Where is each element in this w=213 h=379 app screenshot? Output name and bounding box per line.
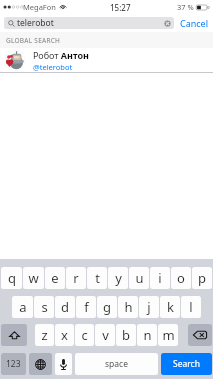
button[interactable]: q (1, 267, 22, 289)
button[interactable]: d (55, 296, 75, 318)
button[interactable]: z (35, 324, 54, 346)
button[interactable]: v (95, 324, 115, 346)
staticText: telerobot (17, 17, 54, 29)
staticText: g (103, 298, 111, 316)
button[interactable]: Search (161, 353, 212, 375)
button[interactable]: k (160, 296, 180, 318)
staticText: q (8, 269, 16, 287)
staticText: @telerobot (33, 62, 73, 72)
staticText: 15:27 (110, 2, 131, 13)
staticText: d (61, 298, 69, 316)
button[interactable]: n (137, 324, 157, 346)
staticText: r (73, 269, 79, 287)
button[interactable]: Change keyboard (29, 353, 52, 375)
button[interactable]: y (108, 267, 128, 289)
staticText: m (162, 326, 175, 344)
button[interactable]: g (97, 296, 117, 318)
button[interactable]: x (55, 324, 74, 346)
button[interactable]: f (76, 296, 96, 318)
button[interactable]: Dictate (55, 353, 72, 375)
button[interactable]: 123 (1, 353, 26, 375)
staticText: 123 (6, 358, 21, 370)
button[interactable]: a (12, 296, 33, 318)
button[interactable]: i (150, 267, 170, 289)
staticText: GLOBAL SEARCH (6, 36, 61, 45)
button[interactable]: e (45, 267, 65, 289)
button[interactable]: p (192, 267, 212, 289)
staticText: t (95, 269, 100, 287)
button[interactable]: Shift (1, 324, 27, 346)
button[interactable]: m (158, 324, 178, 346)
button[interactable]: space (75, 353, 158, 375)
button[interactable]: w (23, 267, 44, 289)
staticText: o (177, 269, 185, 287)
staticText: Робот Антон (33, 49, 89, 61)
staticText: u (135, 269, 144, 287)
staticText: j (147, 298, 151, 316)
button[interactable]: Cancel (180, 17, 209, 29)
staticText: v (102, 326, 109, 344)
staticText: x (61, 326, 68, 344)
staticText: f (84, 298, 89, 316)
button[interactable]: telerobot (4, 17, 174, 29)
staticText: w (28, 269, 39, 287)
button[interactable]: o (171, 267, 191, 289)
staticText: b (122, 326, 130, 344)
button[interactable]: r (66, 267, 86, 289)
staticText: space (105, 358, 128, 370)
button[interactable]: s (34, 296, 54, 318)
staticText: z (41, 326, 48, 344)
staticText: e (51, 269, 59, 287)
button[interactable]: Backspace (188, 324, 212, 346)
staticText: Cancel (180, 17, 209, 29)
button[interactable]: b (116, 324, 136, 346)
button[interactable]: j (139, 296, 159, 318)
button[interactable]: Робот Антон (0, 48, 213, 73)
staticText: p (198, 269, 206, 287)
staticText: i (158, 269, 162, 287)
staticText: y (115, 269, 122, 287)
button[interactable]: u (129, 267, 149, 289)
staticText: n (143, 326, 152, 344)
staticText: k (167, 298, 174, 316)
staticText: 37 % (177, 2, 194, 12)
button[interactable]: t (87, 267, 107, 289)
button[interactable]: l (181, 296, 201, 318)
staticText: l (189, 298, 193, 316)
staticText: s (41, 298, 48, 316)
staticText: MegaFon (23, 2, 56, 12)
staticText: Search (173, 358, 200, 370)
button[interactable]: h (118, 296, 138, 318)
button[interactable]: c (75, 324, 94, 346)
button[interactable]: Clear text (164, 20, 171, 27)
staticText: c (81, 326, 88, 344)
staticText: h (124, 298, 133, 316)
staticText: a (19, 298, 27, 316)
